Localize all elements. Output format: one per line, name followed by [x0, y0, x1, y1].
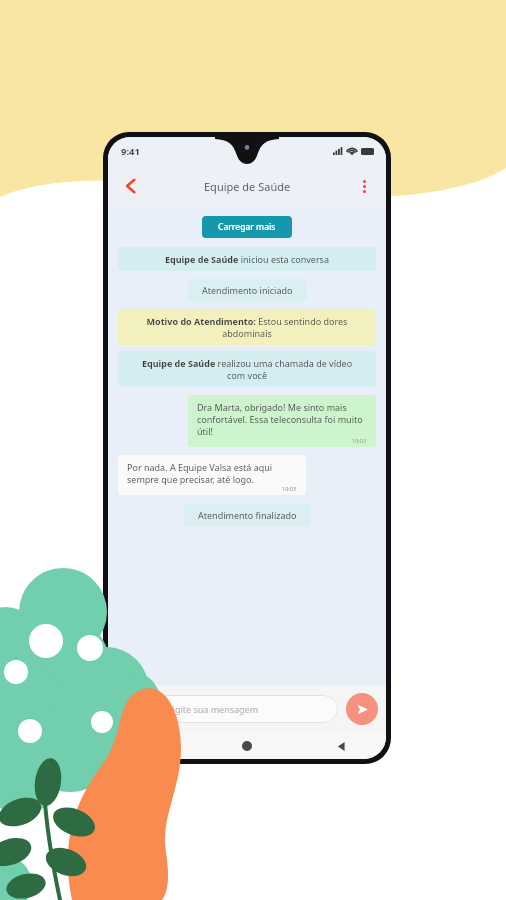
button[interactable]: Back [330, 735, 352, 757]
button[interactable]: Back [114, 169, 148, 203]
button[interactable]: Home [236, 735, 258, 757]
button[interactable]: Atendimento iniciado [188, 279, 307, 301]
staticText: 10:03 [352, 437, 367, 444]
staticText: Atendimento finalizado [198, 509, 297, 521]
button[interactable]: Equipe de Saúde iniciou esta conversa [118, 247, 376, 271]
button[interactable]: Motivo do Atendimento: Estou sentindo do… [118, 309, 376, 345]
button[interactable]: Equipe de Saúde realizou uma chamada de … [118, 351, 376, 387]
button[interactable]: Dra Marta, obrigado! Me sinto mais confo… [188, 395, 376, 447]
button[interactable]: Carregar mais [202, 216, 292, 238]
button[interactable]: Attach file [116, 694, 146, 724]
button[interactable]: Atendimento finalizado [184, 504, 311, 526]
staticText: 10:03 [282, 485, 297, 492]
staticText: Carregar mais [218, 221, 276, 233]
staticText: Dra Marta, obrigado! Me sinto mais confo… [197, 401, 367, 437]
button[interactable]: Send message [346, 693, 378, 725]
staticText: Digite sua mensagem [166, 703, 259, 715]
staticText: Equipe de Saúde realizou uma chamada de … [136, 357, 358, 381]
staticText: Equipe de Saúde iniciou esta conversa [136, 253, 358, 265]
staticText: Por nada. A Equipe Valsa está aqui sempr… [127, 461, 297, 485]
staticText: 9:41 [121, 145, 140, 158]
button[interactable]: More options [349, 171, 379, 201]
button[interactable]: Digite sua mensagem [153, 695, 338, 723]
staticText: Equipe de Saúde [204, 179, 291, 194]
staticText: Motivo do Atendimento: Estou sentindo do… [136, 315, 358, 339]
staticText: Atendimento iniciado [202, 284, 293, 296]
button[interactable]: Por nada. A Equipe Valsa está aqui sempr… [118, 455, 306, 495]
